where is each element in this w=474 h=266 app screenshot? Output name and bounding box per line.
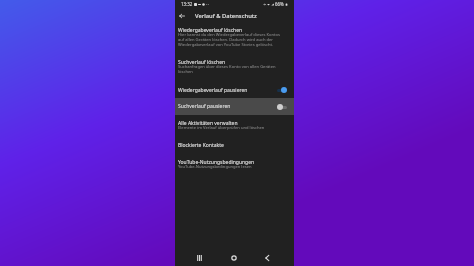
button[interactable]: Back — [177, 11, 187, 21]
button[interactable]: Recent apps — [192, 251, 206, 265]
button[interactable]: Suchverlauf pausieren — [175, 98, 294, 115]
staticText: Suchanfragen über dieses Konto von allen… — [178, 64, 286, 74]
button[interactable]: Blockierte Kontakte — [175, 142, 294, 149]
staticText: Wiedergabeverlauf löschen — [178, 27, 243, 34]
staticText: Suchverlauf pausieren — [178, 103, 231, 110]
staticText: 13:32 — [181, 1, 193, 7]
button[interactable]: Home — [227, 251, 241, 265]
button[interactable]: YouTube-Nutzungsbedingungen — [175, 159, 294, 172]
staticText: Hier kannst du den Wiedergabeverlauf die… — [178, 32, 286, 47]
staticText: Wiedergabeverlauf pausieren — [178, 87, 248, 94]
staticText: YouTube-Nutzungsbedingungen — [178, 159, 255, 166]
staticText: Verlauf & Datenschutz — [195, 12, 257, 20]
button[interactable]: Suchverlauf löschen — [175, 59, 294, 76]
staticText: Alle Aktivitäten verwalten — [178, 120, 238, 127]
button[interactable]: Alle Aktivitäten verwalten — [175, 120, 294, 133]
staticText: YouTube-Nutzungsbedingungen lesen — [178, 164, 252, 170]
staticText: 66% — [275, 1, 284, 7]
staticText: Blockierte Kontakte — [178, 142, 224, 149]
button[interactable]: Back — [260, 251, 274, 265]
staticText: Elemente im Verlauf überprüfen und lösch… — [178, 125, 265, 131]
staticText: Suchverlauf löschen — [178, 59, 226, 66]
button[interactable]: Wiedergabeverlauf pausieren — [175, 82, 294, 98]
button[interactable]: Wiedergabeverlauf löschen — [175, 27, 294, 49]
